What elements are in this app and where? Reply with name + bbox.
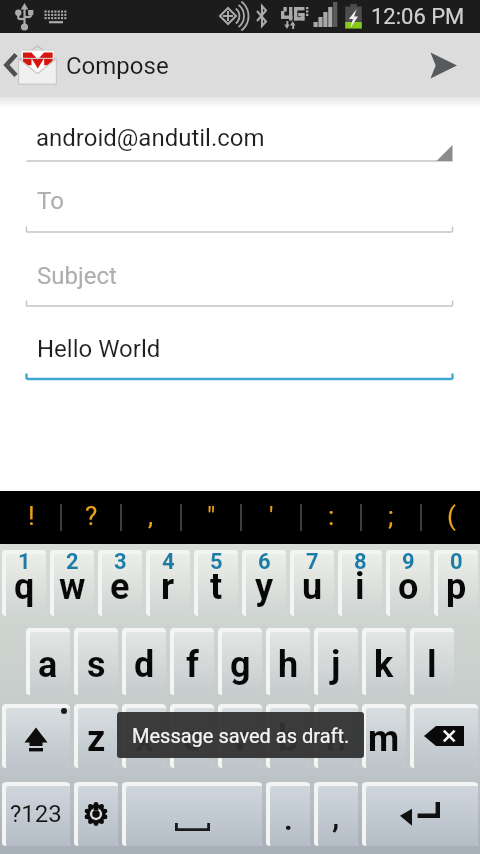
staticText: q (14, 566, 35, 608)
staticText: android@andutil.com (36, 124, 265, 152)
button[interactable]: Send (414, 33, 480, 97)
button[interactable]: ' (241, 491, 301, 544)
staticText: Hello World (37, 335, 161, 363)
button[interactable]: ?123 (2, 782, 70, 846)
staticText: " (207, 501, 216, 531)
staticText: 3 (114, 550, 127, 575)
staticText: l (427, 644, 437, 686)
button[interactable]: m (362, 704, 406, 768)
staticText: y (255, 566, 274, 608)
button[interactable] (0, 258, 480, 310)
staticText: o (398, 566, 419, 608)
button[interactable]: g (218, 628, 262, 695)
button[interactable]: 2 (50, 550, 94, 616)
staticText: Subject (37, 262, 117, 290)
button[interactable] (0, 331, 480, 383)
button[interactable]: 7 (290, 550, 334, 616)
button[interactable]: 6 (242, 550, 286, 616)
button[interactable]: ( (421, 491, 480, 544)
staticText: k (374, 644, 394, 686)
button[interactable]: 1 (2, 550, 46, 616)
staticText: n (326, 718, 347, 760)
staticText: 4 (162, 550, 175, 575)
button[interactable]: , (314, 782, 358, 846)
button[interactable]: Backspace (410, 704, 478, 768)
button[interactable]: ; (361, 491, 421, 544)
button[interactable] (0, 113, 480, 165)
staticText: j (331, 644, 341, 686)
button[interactable]: z (74, 704, 118, 768)
staticText: b (278, 718, 299, 760)
button[interactable]: a (26, 628, 70, 695)
button[interactable]: f (170, 628, 214, 695)
button[interactable]: v (218, 704, 262, 768)
button[interactable]: c (170, 704, 214, 768)
button[interactable]: d (122, 628, 166, 695)
button[interactable]: Space (122, 782, 262, 846)
staticText: , (148, 501, 154, 531)
button[interactable]: 8 (338, 550, 382, 616)
staticText: d (134, 644, 155, 686)
staticText: v (231, 718, 250, 760)
staticText: : (328, 501, 335, 531)
button[interactable]: Input settings (74, 782, 118, 846)
staticText: t (210, 566, 223, 608)
button[interactable]: 9 (386, 550, 430, 616)
staticText: 8 (354, 550, 367, 575)
button[interactable]: h (266, 628, 310, 695)
staticText: ' (269, 501, 274, 531)
staticText: i (355, 566, 365, 608)
button[interactable]: ? (61, 491, 121, 544)
staticText: c (183, 718, 202, 760)
button[interactable]: j (314, 628, 358, 695)
staticText: 6 (258, 550, 271, 575)
staticText: z (87, 718, 106, 760)
staticText: 7 (306, 550, 319, 575)
staticText: 1 (18, 550, 31, 575)
staticText: 12:06 PM (371, 4, 465, 30)
staticText: s (87, 644, 106, 686)
staticText: f (186, 644, 199, 686)
button[interactable] (0, 184, 480, 236)
staticText: . (284, 802, 293, 837)
staticText: p (446, 566, 467, 608)
button[interactable]: : (301, 491, 361, 544)
button[interactable]: n (314, 704, 358, 768)
staticText: w (59, 566, 86, 608)
button[interactable]: . (266, 782, 310, 846)
button[interactable]: b (266, 704, 310, 768)
staticText: ( (447, 501, 456, 531)
staticText: ! (28, 501, 35, 531)
staticText: x (135, 718, 154, 760)
staticText: To (37, 187, 64, 215)
staticText: Compose (66, 52, 169, 80)
button[interactable]: 4 (146, 550, 190, 616)
button[interactable]: k (362, 628, 406, 695)
staticText: a (38, 644, 58, 686)
staticText: 2 (66, 550, 79, 575)
button[interactable]: ! (1, 491, 61, 544)
staticText: Message saved as draft. (132, 724, 350, 747)
staticText: , (332, 800, 340, 835)
button[interactable]: 0 (434, 550, 478, 616)
button[interactable]: Shift (2, 704, 70, 768)
staticText: 9 (402, 550, 415, 575)
button[interactable]: 5 (194, 550, 238, 616)
staticText: ? (85, 501, 98, 531)
staticText: g (230, 644, 251, 686)
staticText: 5 (210, 550, 223, 575)
staticText: ?123 (10, 800, 62, 828)
button[interactable]: l (410, 628, 454, 695)
button[interactable]: 3 (98, 550, 142, 616)
staticText: u (302, 566, 323, 608)
button[interactable]: Navigate up (0, 33, 62, 97)
button[interactable]: , (121, 491, 181, 544)
button[interactable]: " (181, 491, 241, 544)
staticText: m (368, 718, 400, 760)
staticText: h (278, 644, 299, 686)
button[interactable]: x (122, 704, 166, 768)
staticText: r (161, 566, 175, 608)
button[interactable]: s (74, 628, 118, 695)
staticText: 0 (450, 550, 463, 575)
button[interactable]: Enter (362, 782, 478, 846)
